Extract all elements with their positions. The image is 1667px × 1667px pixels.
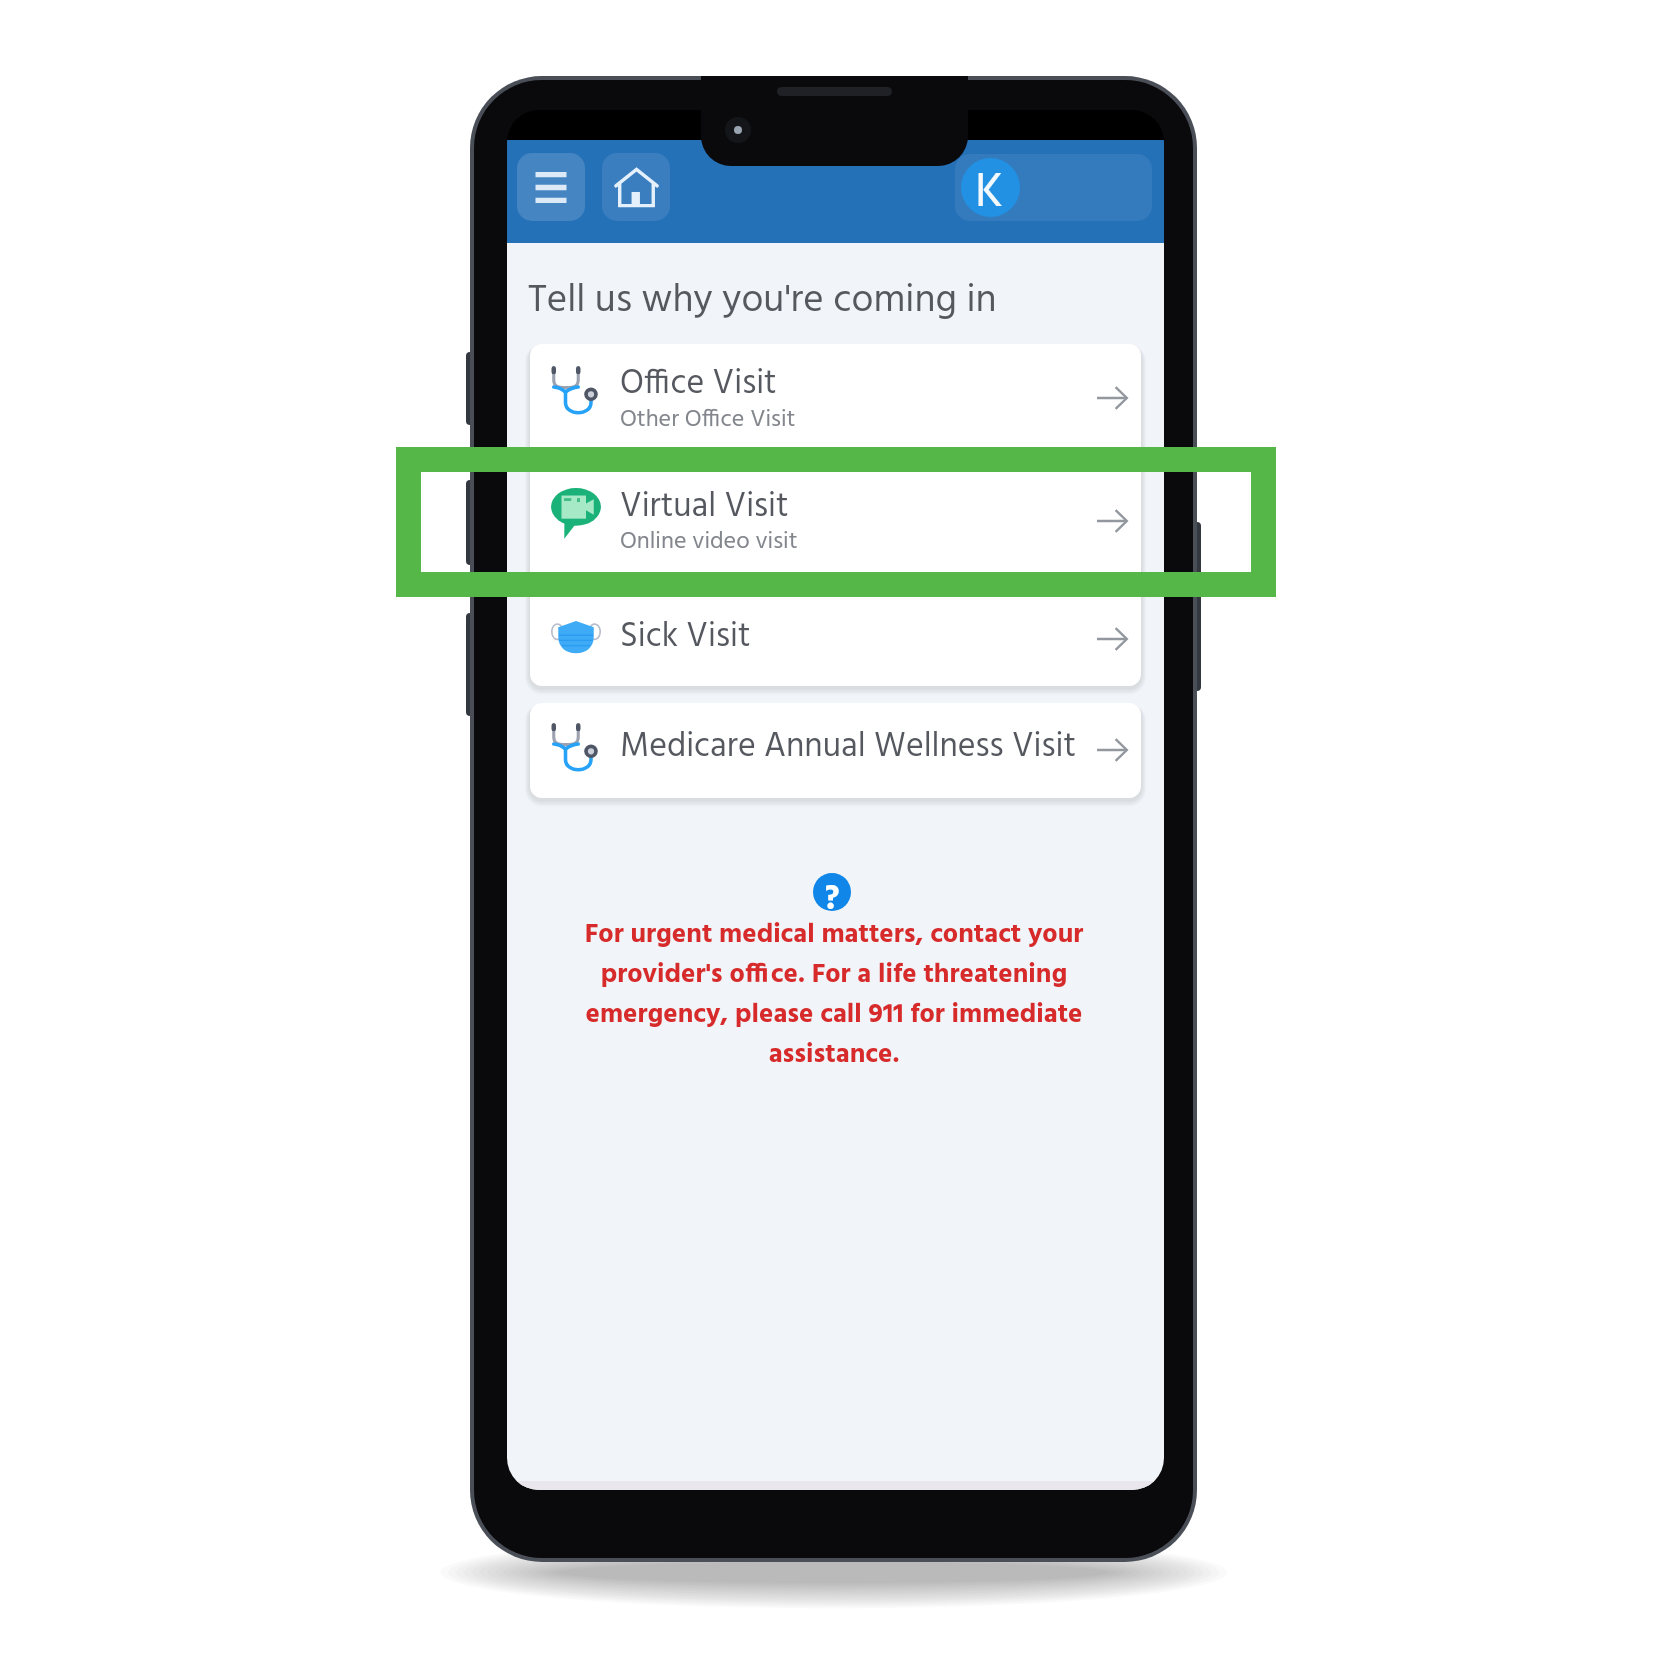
staticText: Sick Visit xyxy=(620,610,751,664)
staticText: ? xyxy=(824,873,840,911)
staticText: K xyxy=(975,158,1004,213)
button[interactable]: Account xyxy=(955,154,1152,221)
staticText: Other Office Visit xyxy=(620,401,796,439)
button[interactable]: Medicare Annual Wellness Visit xyxy=(530,703,1141,798)
button[interactable]: Sick Visit xyxy=(530,584,1141,686)
staticText: Medicare Annual Wellness Visit xyxy=(620,720,1076,774)
button[interactable]: Home xyxy=(602,153,670,221)
button[interactable]: Help xyxy=(813,873,851,911)
staticText: Tell us why you're coming in xyxy=(528,270,997,332)
staticText: Virtual Visit xyxy=(620,480,789,534)
staticText: Office Visit xyxy=(620,357,777,411)
staticText: For urgent medical matters, contact your… xyxy=(574,914,1094,1077)
staticText: Online video visit xyxy=(620,523,798,561)
button[interactable]: Virtual Visit xyxy=(530,464,1141,584)
button[interactable]: Menu xyxy=(517,153,585,221)
button[interactable]: Office Visit xyxy=(530,344,1141,464)
